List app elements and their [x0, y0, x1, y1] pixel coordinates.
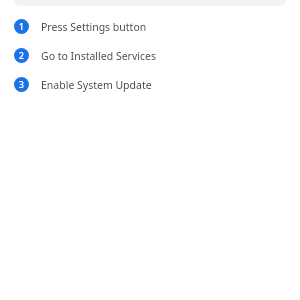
button[interactable]: 1	[0, 12, 300, 41]
staticText: Enable System Update	[41, 78, 152, 92]
staticText: Go to Installed Services	[41, 49, 156, 63]
button[interactable]: 3	[0, 70, 300, 99]
staticText: Press Settings button	[41, 20, 147, 34]
staticText: 1	[19, 21, 24, 33]
staticText: 3	[19, 79, 24, 91]
staticText: 2	[19, 50, 24, 62]
button[interactable]: 2	[0, 41, 300, 70]
